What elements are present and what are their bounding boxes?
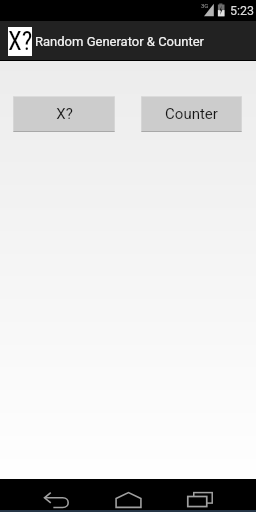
staticText: 5:23 [230, 3, 255, 18]
button[interactable]: Back [27, 479, 87, 512]
button[interactable]: Home [98, 479, 158, 512]
button[interactable]: Recents [170, 479, 230, 512]
staticText: Counter [165, 105, 218, 123]
staticText: Random Generator & Counter [35, 34, 204, 49]
staticText: X? [56, 105, 73, 123]
staticText: 3G [201, 2, 209, 9]
button[interactable]: X? [13, 96, 115, 132]
button[interactable]: Counter [141, 96, 242, 132]
staticText: X? [8, 27, 33, 56]
